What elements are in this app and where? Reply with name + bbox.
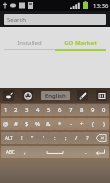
button[interactable]: & xyxy=(43,118,54,130)
staticText: $ xyxy=(25,120,29,128)
staticText: + xyxy=(80,120,84,128)
staticText: 4 xyxy=(36,106,40,114)
button[interactable]: Settings xyxy=(96,90,107,101)
button[interactable]: 0 xyxy=(98,104,109,116)
staticText: : xyxy=(54,134,56,142)
button[interactable]: 1 xyxy=(1,104,11,116)
staticText: ( xyxy=(92,120,94,128)
button[interactable]: 4 xyxy=(32,104,43,116)
button[interactable]: ! xyxy=(16,132,27,144)
staticText: ABC xyxy=(6,149,15,155)
staticText: - xyxy=(70,120,72,128)
staticText: Installed xyxy=(4,39,55,47)
staticText: 13:36 xyxy=(93,2,109,10)
button[interactable]: ; xyxy=(60,132,71,144)
button[interactable]: 8 xyxy=(76,104,87,116)
staticText: ? xyxy=(86,134,89,142)
staticText: 0 xyxy=(102,106,106,114)
staticText: * xyxy=(58,120,62,128)
button[interactable]: ALT xyxy=(1,132,16,144)
button[interactable]: ' xyxy=(38,132,49,144)
button[interactable]: $ xyxy=(21,118,32,130)
button[interactable]: . xyxy=(80,146,91,158)
button[interactable]: , xyxy=(19,146,30,158)
button[interactable]: Space xyxy=(30,146,80,158)
button[interactable]: : xyxy=(49,132,60,144)
staticText: , xyxy=(24,148,26,156)
staticText: Search xyxy=(7,16,26,24)
staticText: 9 xyxy=(91,106,95,114)
button[interactable]: 3 xyxy=(21,104,32,116)
staticText: 6 xyxy=(58,106,62,114)
staticText: ; xyxy=(65,134,67,142)
button[interactable]: GO Market xyxy=(55,39,106,51)
button[interactable]: Installed xyxy=(4,39,55,50)
button[interactable]: Enter xyxy=(91,146,109,158)
staticText: @ xyxy=(3,120,9,128)
button[interactable]: 7 xyxy=(65,104,76,116)
staticText: # xyxy=(14,120,18,128)
staticText: 8 xyxy=(80,106,84,114)
button[interactable]: / xyxy=(71,132,82,144)
staticText: ! xyxy=(21,134,23,142)
staticText: ALT xyxy=(5,135,13,141)
staticText: GO Market xyxy=(55,39,106,47)
staticText: . xyxy=(85,148,87,156)
staticText: & xyxy=(46,120,51,128)
button[interactable]: - xyxy=(65,118,76,130)
button[interactable]: % xyxy=(32,118,43,130)
button[interactable]: @ xyxy=(1,118,11,130)
button[interactable]: ? xyxy=(82,132,93,144)
staticText: 7 xyxy=(69,106,73,114)
button[interactable]: English xyxy=(41,91,70,100)
staticText: 2 xyxy=(14,106,18,114)
staticText: 3 xyxy=(25,106,29,114)
button[interactable]: 9 xyxy=(87,104,98,116)
button[interactable]: ABC xyxy=(1,146,19,158)
button[interactable]: Backspace xyxy=(93,132,109,144)
button[interactable]: 6 xyxy=(54,104,65,116)
staticText: % xyxy=(35,120,40,128)
button[interactable]: Theme xyxy=(3,90,14,101)
staticText: 5 xyxy=(47,106,51,114)
button[interactable]: 5 xyxy=(43,104,54,116)
button[interactable]: 2 xyxy=(11,104,21,116)
button[interactable]: * xyxy=(54,118,65,130)
button[interactable]: " xyxy=(27,132,38,144)
button[interactable]: Emoji xyxy=(22,90,33,101)
button[interactable]: Handwriting xyxy=(77,90,88,101)
staticText: 1 xyxy=(4,106,8,114)
staticText: ' xyxy=(43,134,45,142)
staticText: English xyxy=(45,92,66,100)
button[interactable]: ( xyxy=(87,118,98,130)
button[interactable]: + xyxy=(76,118,87,130)
staticText: ) xyxy=(103,120,105,128)
staticText: " xyxy=(31,134,34,142)
button[interactable]: ) xyxy=(98,118,109,130)
staticText: / xyxy=(75,134,78,142)
button[interactable]: Search xyxy=(4,14,106,25)
button[interactable]: # xyxy=(11,118,21,130)
